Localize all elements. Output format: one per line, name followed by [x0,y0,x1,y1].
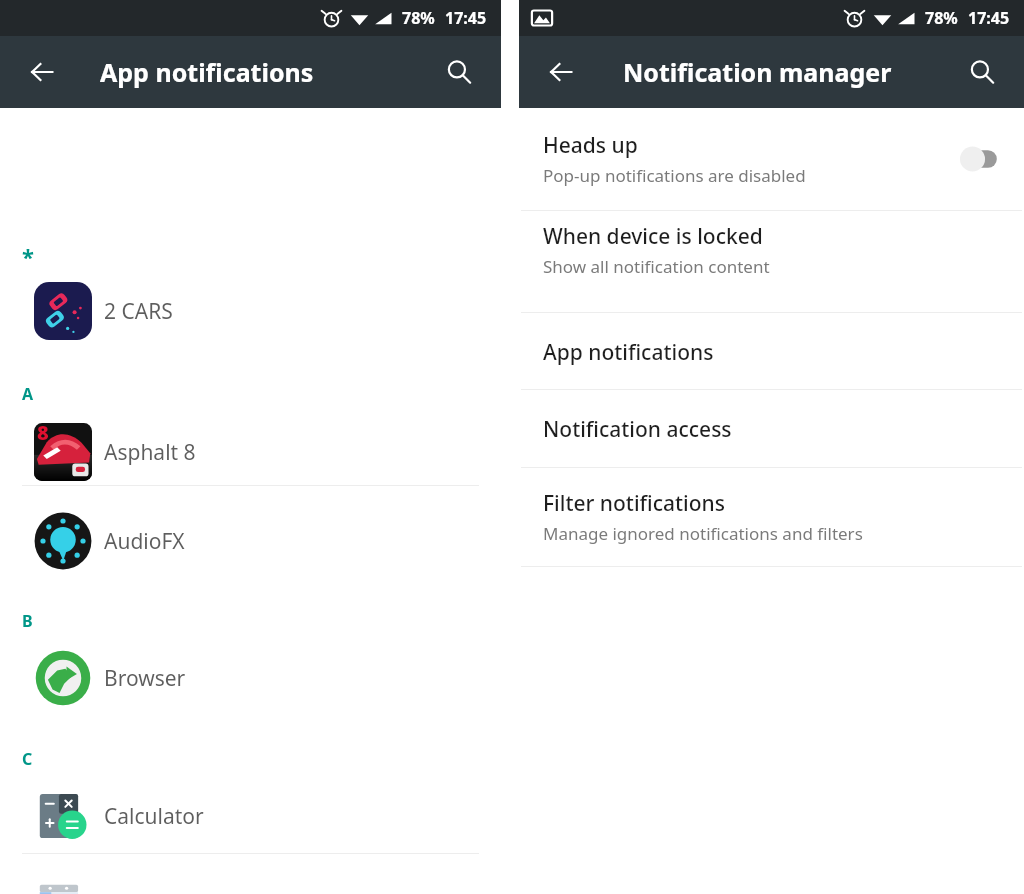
staticText: AudioFX [104,527,185,556]
staticText: Calculator [104,802,204,831]
staticText: Browser [104,664,186,693]
staticText: Notification manager [623,55,892,89]
staticText: 17:45 [968,7,1010,29]
staticText: App notifications [100,55,314,89]
staticText: When device is locked [543,222,763,251]
staticText: 8 [37,423,49,446]
button[interactable]: Calculator [0,783,501,849]
button[interactable]: Notification access [519,390,1024,468]
button[interactable]: Filter notifications [519,468,1024,566]
staticText: Pop-up notifications are disabled [543,164,806,187]
staticText: A [22,383,34,405]
staticText: * [22,241,34,271]
staticText: 78% [402,7,435,29]
staticText: B [22,610,33,632]
button[interactable]: Back [539,50,583,94]
button[interactable]: Calendar [0,872,501,894]
staticText: Notification access [543,415,732,444]
button[interactable]: Browser [0,645,501,711]
button[interactable]: Search [437,50,481,94]
button[interactable]: When device is locked [519,211,1024,289]
button[interactable]: 8 [0,419,501,485]
staticText: 17:45 [445,7,487,29]
staticText: Asphalt 8 [104,438,196,467]
button[interactable]: Heads up [519,108,1024,210]
staticText: Filter notifications [543,489,725,518]
button[interactable]: 2 CARS [0,278,501,344]
staticText: C [22,748,33,770]
staticText: Heads up [543,131,638,160]
staticText: App notifications [543,338,714,367]
staticText: 2 CARS [104,297,173,326]
button[interactable]: Back [20,50,64,94]
button[interactable]: AudioFX [0,508,501,574]
button[interactable]: App notifications [519,313,1024,391]
button[interactable]: Heads up toggle [950,137,1002,181]
staticText: Show all notification content [543,255,770,278]
staticText: 78% [925,7,958,29]
staticText: Manage ignored notifications and filters [543,522,863,545]
button[interactable]: Search [960,50,1004,94]
